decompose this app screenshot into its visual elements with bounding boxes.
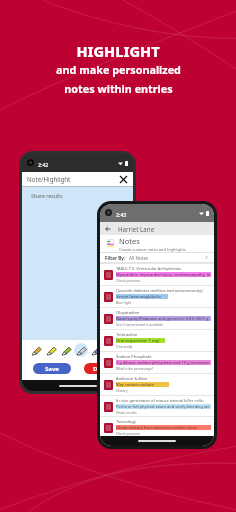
button[interactable]: Back [103, 224, 113, 234]
staticText: Toxicology [116, 419, 136, 424]
button[interactable]: Highlighter colour [89, 343, 103, 357]
staticText: Blue light [116, 300, 132, 305]
staticText: Obtain history from witnesses and/or clo… [116, 425, 211, 430]
staticText: Amikacin Sulfate [116, 376, 148, 381]
staticText: May contain sodium bisulfite [116, 382, 169, 387]
staticText: Create custom notes and highlights [119, 247, 186, 252]
staticText: notes within entries [64, 81, 173, 96]
staticText: Note/Highlight [27, 175, 71, 183]
staticText: 2:42 [38, 161, 49, 168]
staticText: Oral suspension: 1 mg/mL [116, 338, 165, 343]
staticText: In vivo generation of mouse natural kill… [116, 398, 211, 403]
staticText: Share results [31, 192, 63, 199]
button[interactable]: Terbutaline [100, 329, 214, 351]
staticText: Serum Immunoglobulin Levels [116, 294, 168, 299]
staticText: Check pressure [116, 431, 141, 436]
staticText: Check pressure [116, 278, 141, 283]
staticText: One orally [116, 344, 133, 349]
button[interactable]: Highlighter colour [59, 343, 73, 357]
staticText: HIGHLIGHT [76, 41, 160, 61]
staticText: Notes [119, 236, 140, 246]
staticText: 1 g dibasic sodium phosphate and 19 g mo… [116, 360, 210, 365]
staticText: Perform full physical exam and verify bl… [116, 404, 210, 409]
button[interactable]: [Juvenile diabetes mellitus and autoimmu… [100, 285, 214, 307]
button[interactable]: Highlighter colour [44, 343, 58, 357]
staticText: See if name brand is available [116, 322, 164, 327]
staticText: History [116, 388, 128, 393]
staticText: Filter By: [105, 255, 126, 261]
staticText: Nasal spray (Patanase and generics): 0.6… [116, 316, 209, 321]
button[interactable]: Highlighter colour [74, 343, 88, 357]
button[interactable]: TABLE 7.5: Ventricular Arrhythmias [100, 263, 214, 285]
button[interactable]: Toxicology [100, 416, 214, 438]
staticText: Harriet Lane [118, 225, 155, 233]
button[interactable]: Delete [84, 363, 122, 374]
staticText: What's the percentage? [116, 366, 154, 371]
button[interactable]: Close [118, 174, 129, 185]
staticText: Terbutaline [116, 332, 138, 337]
staticText: and make personalized [56, 62, 181, 77]
staticText: 2:43 [116, 211, 127, 218]
staticText: Delete [93, 365, 113, 373]
staticText: [Juvenile diabetes mellitus and autoimmu… [116, 288, 203, 293]
staticText: Save [45, 365, 59, 373]
button[interactable]: Highlighter colour [29, 343, 43, 357]
button[interactable]: Sodium Phosphate [100, 351, 214, 373]
staticText: Olopatadine [116, 310, 140, 315]
button[interactable]: Amikacin Sulfate [100, 373, 214, 395]
staticText: All Notes [129, 255, 149, 261]
button[interactable]: Filter By: [105, 253, 209, 262]
button[interactable]: In vivo generation of mouse natural kill… [100, 395, 214, 417]
staticText: Myocarditis, myocardial injury, cardiomy… [116, 272, 211, 277]
staticText: Share results [116, 410, 137, 415]
staticText: Sodium Phosphate [116, 354, 152, 359]
button[interactable]: Save [33, 363, 71, 374]
staticText: TABLE 7.5: Ventricular Arrhythmias [116, 266, 181, 271]
button[interactable]: Olopatadine [100, 307, 214, 329]
